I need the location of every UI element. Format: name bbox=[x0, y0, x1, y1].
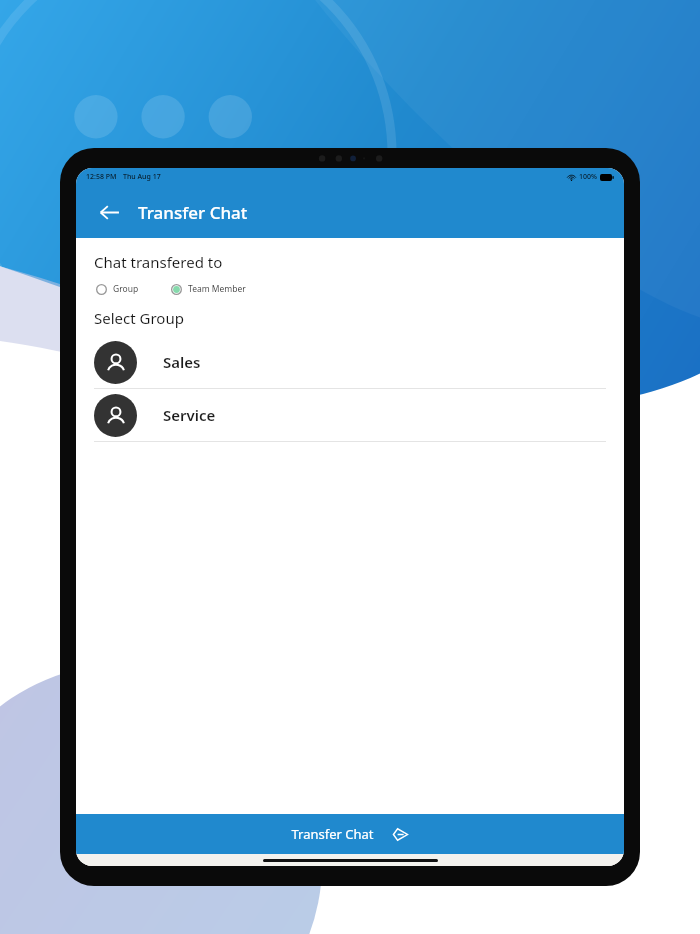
staticText: 100% bbox=[579, 172, 597, 182]
staticText: Transfer Chat bbox=[138, 201, 248, 224]
button[interactable]: Team Member bbox=[169, 280, 248, 298]
button[interactable]: Group bbox=[94, 280, 141, 298]
button[interactable]: Back bbox=[94, 197, 124, 227]
staticText: Sales bbox=[163, 352, 201, 372]
staticText: Service bbox=[163, 405, 216, 425]
staticText: Chat transfered to bbox=[94, 252, 223, 272]
button[interactable]: Sales bbox=[76, 336, 624, 388]
button[interactable]: Service bbox=[76, 389, 624, 441]
staticText: Select Group bbox=[94, 308, 184, 328]
staticText: Transfer Chat bbox=[291, 825, 374, 843]
button[interactable]: Transfer Chat bbox=[76, 814, 624, 854]
staticText: Team Member bbox=[188, 283, 246, 295]
staticText: Thu Aug 17 bbox=[123, 172, 161, 182]
staticText: 12:58 PM bbox=[86, 172, 117, 182]
staticText: Group bbox=[113, 283, 139, 295]
